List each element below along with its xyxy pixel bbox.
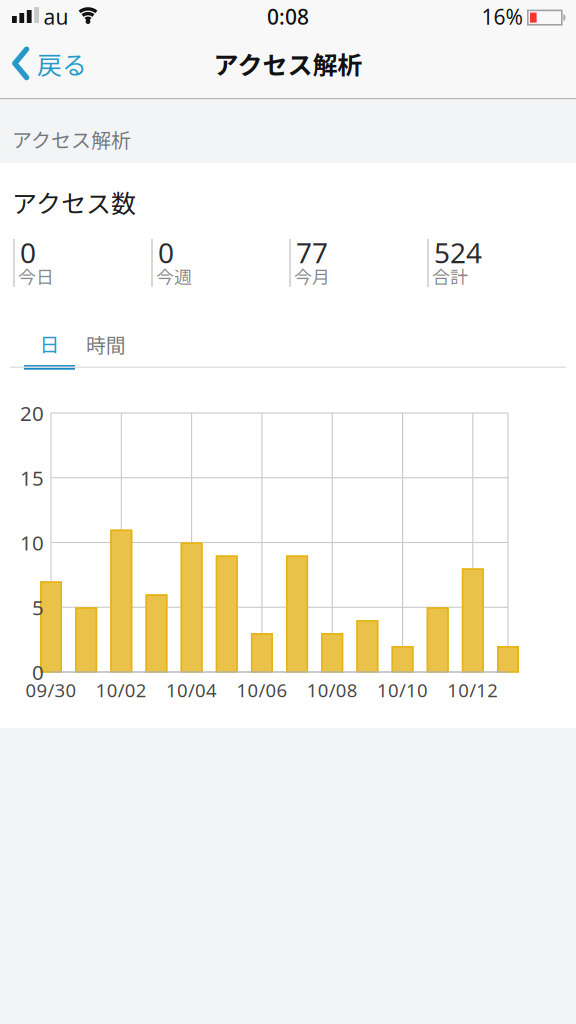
staticText: 10 [20, 528, 44, 556]
staticText: 日 [39, 329, 59, 358]
staticText: 10/02 [96, 677, 147, 703]
staticText: 0 [158, 233, 174, 271]
button[interactable]: 時間 [86, 329, 126, 358]
staticText: 20 [20, 399, 44, 427]
staticText: アクセス解析 [12, 124, 131, 153]
staticText: 戻る [37, 45, 87, 82]
staticText: 15 [20, 464, 44, 492]
staticText: 10/10 [377, 677, 428, 703]
staticText: 10/08 [307, 677, 358, 703]
staticText: 今月 [294, 263, 330, 289]
staticText: 09/30 [25, 677, 76, 703]
button[interactable]: 日 [24, 329, 75, 370]
staticText: 合計 [432, 263, 468, 289]
staticText: 77 [296, 233, 328, 271]
staticText: 524 [434, 233, 482, 271]
staticText: 0 [32, 658, 44, 686]
staticText: 10/06 [236, 677, 287, 703]
staticText: 5 [32, 593, 44, 621]
staticText: 10/04 [166, 677, 217, 703]
staticText: アクセス数 [12, 184, 136, 220]
staticText: 今週 [156, 263, 192, 289]
staticText: 0:08 [267, 2, 309, 31]
staticText: 0 [20, 233, 36, 271]
staticText: 今日 [18, 263, 54, 289]
staticText: 時間 [86, 329, 126, 358]
staticText: アクセス解析 [213, 45, 362, 82]
staticText: 10/12 [447, 677, 498, 703]
staticText: 16% [481, 2, 522, 31]
button[interactable]: 戻る [12, 45, 172, 82]
staticText: au [43, 2, 68, 31]
